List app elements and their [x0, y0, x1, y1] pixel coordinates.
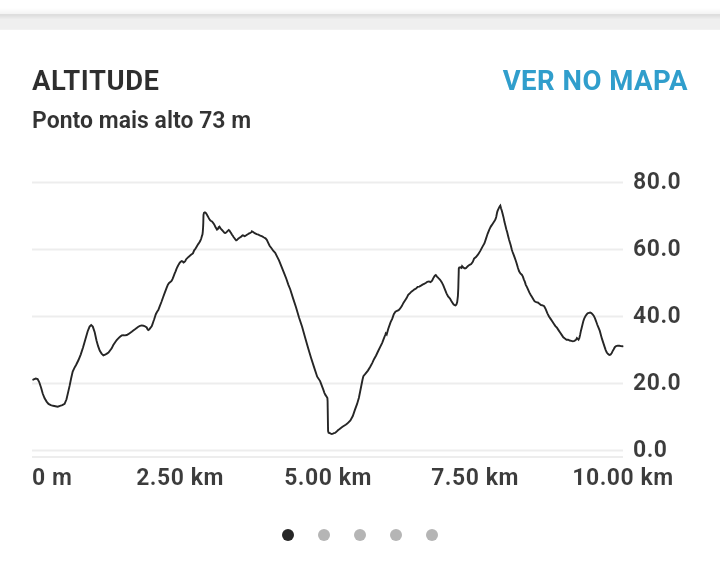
staticText: 10.00 km: [548, 464, 698, 494]
staticText: VER NO MAPA: [460, 64, 688, 100]
button[interactable]: VER NO MAPA: [460, 64, 688, 100]
staticText: ALTITUDE: [32, 64, 160, 96]
staticText: 60.0: [633, 235, 682, 262]
button[interactable]: Page 5: [426, 529, 438, 541]
button[interactable]: Page 2: [318, 529, 330, 541]
staticText: 80.0: [633, 168, 682, 195]
staticText: Ponto mais alto 73 m: [32, 107, 252, 134]
staticText: 0 m: [32, 464, 73, 491]
staticText: 20.0: [633, 369, 682, 396]
staticText: 2.50 km: [105, 464, 255, 494]
staticText: 40.0: [633, 302, 682, 329]
staticText: 7.50 km: [400, 464, 550, 494]
staticText: 0.0: [633, 436, 668, 463]
button[interactable]: Page 1: [282, 529, 294, 541]
button[interactable]: Page 3: [354, 529, 366, 541]
staticText: 5.00 km: [253, 464, 403, 494]
button[interactable]: Page 4: [390, 529, 402, 541]
